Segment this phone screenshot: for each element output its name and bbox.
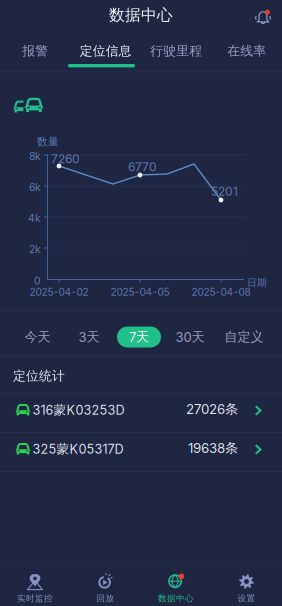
staticText: 27026条 xyxy=(186,401,238,417)
button[interactable]: 行驶里程 xyxy=(141,38,211,68)
staticText: 8k xyxy=(29,150,41,163)
button[interactable]: 在线率 xyxy=(211,38,282,68)
button[interactable]: 通知 xyxy=(251,6,275,28)
button[interactable]: 今天 xyxy=(11,325,63,349)
button[interactable]: 3天 xyxy=(63,325,115,349)
button[interactable]: 定位信息 xyxy=(70,38,141,68)
staticText: 报警 xyxy=(22,43,48,59)
staticText: 数据中心 xyxy=(158,593,194,604)
staticText: 7260 xyxy=(51,151,80,166)
staticText: 325蒙K05317D xyxy=(32,441,123,457)
staticText: 3天 xyxy=(78,329,99,345)
button[interactable]: 自定义 xyxy=(218,325,270,349)
staticText: 6770 xyxy=(128,159,157,174)
staticText: 2025-04-02 xyxy=(29,286,88,298)
button[interactable]: 设置 xyxy=(211,568,282,606)
staticText: 定位信息 xyxy=(80,43,132,59)
staticText: 自定义 xyxy=(224,329,263,345)
staticText: 4k xyxy=(28,212,41,225)
staticText: 设置 xyxy=(237,593,255,604)
staticText: 数量 xyxy=(37,135,59,148)
button[interactable]: 7天 xyxy=(113,325,165,349)
staticText: 日期 xyxy=(247,276,267,289)
staticText: 30天 xyxy=(175,329,204,345)
button[interactable]: 回放 xyxy=(70,568,141,606)
button[interactable]: 30天 xyxy=(164,325,216,349)
staticText: 在线率 xyxy=(227,43,266,59)
button[interactable]: 数据中心 xyxy=(141,568,211,606)
staticText: 2k xyxy=(29,243,41,256)
staticText: 2025-04-08 xyxy=(191,286,250,298)
staticText: 316蒙K03253D xyxy=(32,402,124,418)
staticText: 定位统计 xyxy=(13,368,65,384)
button[interactable]: 实时监控 xyxy=(0,568,70,606)
staticText: 回放 xyxy=(96,593,114,604)
staticText: 7天 xyxy=(129,329,149,345)
button[interactable]: 316蒙K03253D xyxy=(0,394,282,432)
button[interactable]: 报警 xyxy=(0,38,70,68)
staticText: 实时监控 xyxy=(17,593,53,604)
staticText: 0 xyxy=(34,274,41,287)
staticText: 2025-04-05 xyxy=(110,286,169,298)
staticText: 6k xyxy=(29,181,41,194)
staticText: 5201 xyxy=(211,184,238,198)
staticText: 19638条 xyxy=(188,440,238,456)
staticText: 今天 xyxy=(24,329,50,345)
staticText: 数据中心 xyxy=(109,5,173,25)
button[interactable]: 325蒙K05317D xyxy=(0,433,282,471)
staticText: 行驶里程 xyxy=(150,43,202,59)
